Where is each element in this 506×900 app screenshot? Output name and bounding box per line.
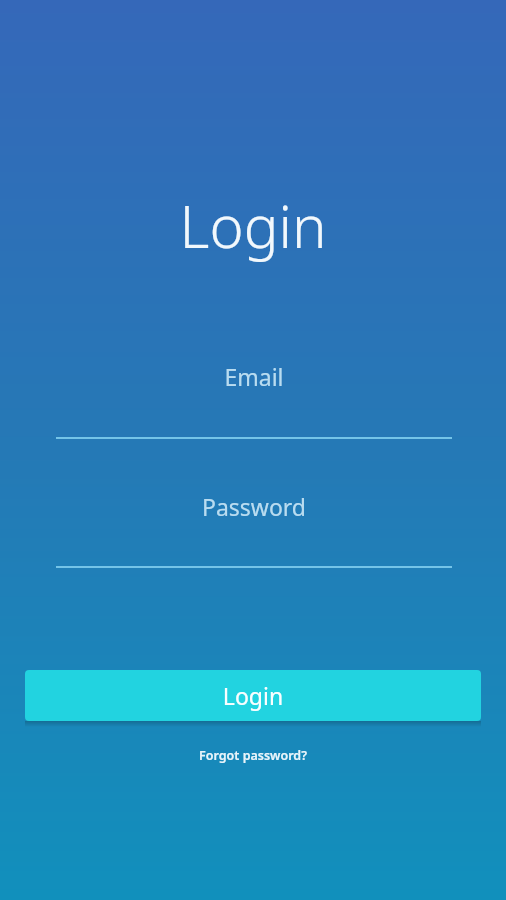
button[interactable]: Password [56, 491, 452, 574]
button[interactable]: Email [56, 361, 452, 445]
staticText: Login [25, 680, 481, 711]
staticText: Login [0, 186, 506, 265]
staticText: Email [56, 361, 452, 392]
staticText: Password [56, 491, 452, 522]
staticText: Forgot password? [199, 747, 307, 764]
button[interactable]: Forgot password? [189, 744, 317, 767]
button[interactable]: Login [25, 670, 481, 721]
